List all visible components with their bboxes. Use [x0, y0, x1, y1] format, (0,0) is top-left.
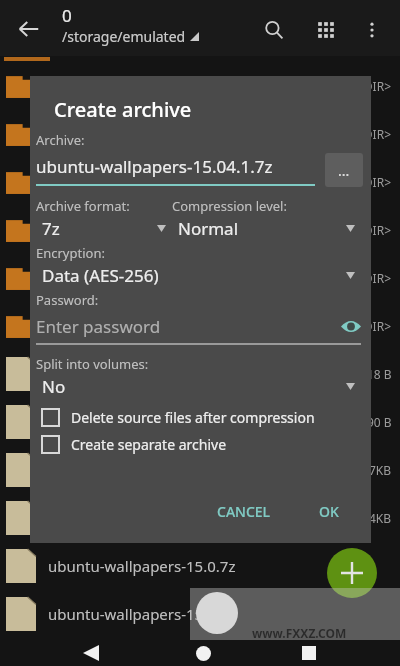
button[interactable]: ubuntu-wallpapers-15.0.7z	[0, 590, 400, 638]
staticText: No	[42, 375, 346, 398]
button[interactable]: No	[36, 375, 361, 398]
button[interactable]: ubuntu-wallpapers-15.04.1.7z	[36, 155, 315, 186]
staticText: <DIR>	[357, 126, 392, 142]
staticText: 18 B	[367, 366, 392, 382]
staticText: <DIR>	[357, 270, 392, 286]
button[interactable]: 7z	[36, 217, 172, 240]
button[interactable]: <DIR>	[0, 302, 400, 350]
button[interactable]: CANCEL	[205, 494, 283, 529]
staticText: Enter password	[36, 315, 341, 338]
staticText: 7z	[42, 217, 157, 240]
staticText: Create separate archive	[71, 435, 227, 454]
staticText: 0	[62, 4, 72, 27]
button[interactable]: <DIR>	[0, 62, 400, 110]
staticText: Encryption:	[36, 244, 105, 262]
staticText: Create archive	[54, 96, 192, 123]
staticText: <DIR>	[357, 222, 392, 238]
button[interactable]: OK	[307, 494, 351, 529]
button[interactable]: <DIR>	[0, 254, 400, 302]
staticText: CANCEL	[217, 502, 271, 521]
button[interactable]: Home	[190, 640, 216, 666]
staticText: ubuntu-wallpapers-15.04.1.7z	[36, 155, 273, 178]
staticText: <DIR>	[357, 318, 392, 334]
staticText: Split into volumes:	[36, 355, 149, 373]
staticText: Delete source files after compression	[71, 408, 315, 427]
button[interactable]: 4KB	[0, 494, 400, 542]
staticText: Normal	[178, 217, 346, 240]
staticText: OK	[319, 502, 339, 521]
button[interactable]: More options	[356, 14, 388, 46]
staticText: 7KB	[369, 462, 392, 478]
button[interactable]: Normal	[172, 217, 361, 240]
button[interactable]: Add	[327, 548, 377, 598]
button[interactable]: 18 B	[0, 350, 400, 398]
button[interactable]: Browse	[325, 153, 363, 187]
staticText: ...	[338, 161, 350, 180]
button[interactable]: Grid view	[310, 14, 342, 46]
button[interactable]: Recent apps	[296, 640, 322, 666]
button[interactable]: ubuntu-wallpapers-15.0.7z	[0, 542, 400, 590]
button[interactable]: Delete source files after compression	[42, 408, 361, 427]
staticText: Password:	[36, 291, 99, 309]
button[interactable]: <DIR>	[0, 158, 400, 206]
button[interactable]: 90 B	[0, 398, 400, 446]
button[interactable]: Back	[12, 12, 46, 46]
staticText: ubuntu-wallpapers-15.0.7z	[48, 556, 236, 576]
button[interactable]: Back	[78, 640, 104, 666]
button[interactable]: Create separate archive	[42, 435, 361, 454]
staticText: Compression level:	[172, 197, 287, 215]
staticText: 90 B	[367, 414, 392, 430]
staticText: /storage/emulated	[62, 27, 186, 46]
staticText: <DIR>	[357, 174, 392, 190]
button[interactable]: Enter password	[36, 315, 361, 345]
staticText: Archive format:	[36, 197, 130, 215]
button[interactable]: <DIR>	[0, 110, 400, 158]
staticText: Archive:	[36, 131, 85, 149]
staticText: ubuntu-wallpapers-15.0.7z	[48, 604, 236, 624]
button[interactable]: Search	[258, 14, 290, 46]
button[interactable]: 7KB	[0, 446, 400, 494]
staticText: 4KB	[369, 510, 392, 526]
staticText: www.FXXZ.COM	[252, 625, 347, 641]
button[interactable]: Data (AES-256)	[36, 264, 361, 287]
staticText: Data (AES-256)	[42, 264, 346, 287]
button[interactable]: <DIR>	[0, 206, 400, 254]
staticText: <DIR>	[357, 78, 392, 94]
